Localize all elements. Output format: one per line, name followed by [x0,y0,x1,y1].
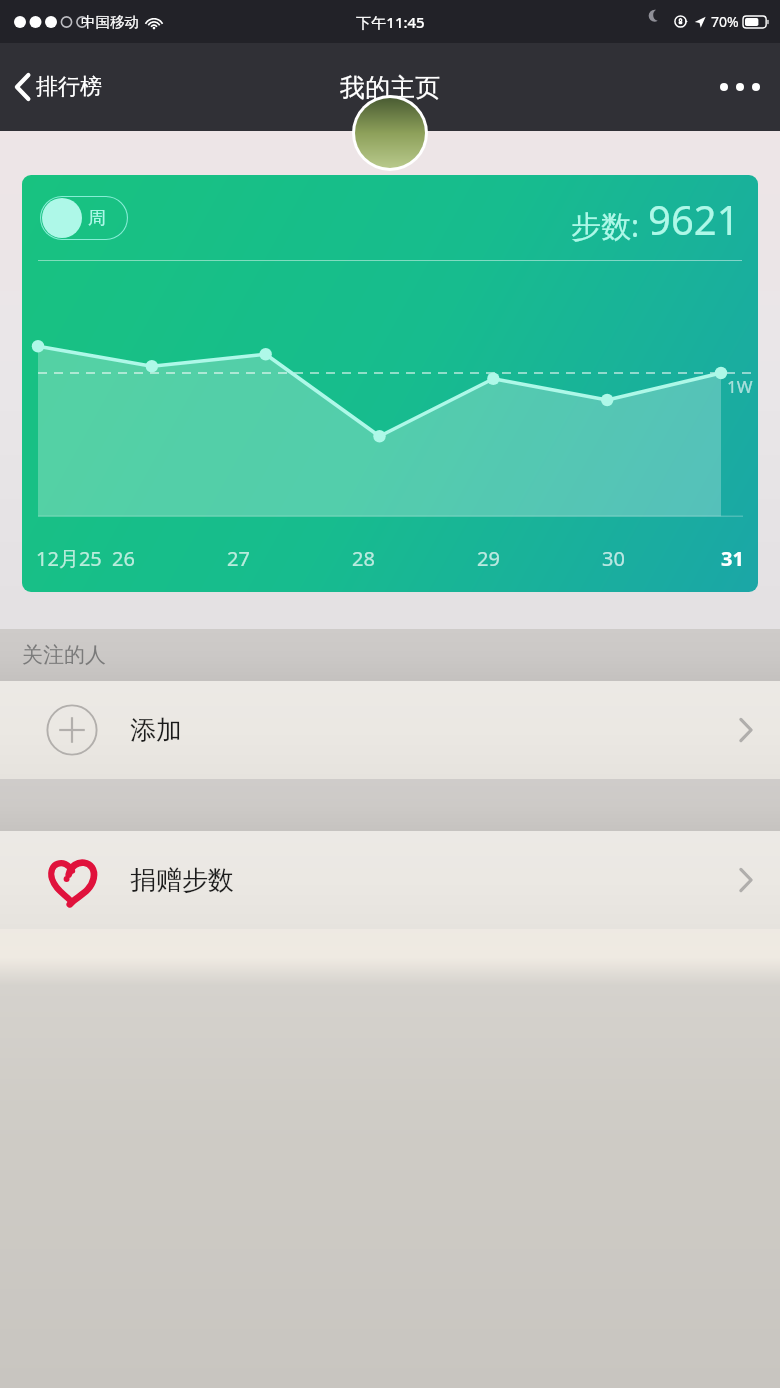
button[interactable]: 排行榜 [0,64,114,110]
staticText: 添加 [130,714,182,747]
button[interactable]: 周 [22,175,758,592]
button[interactable]: 周 [40,196,128,240]
staticText: 9621 [648,192,740,246]
staticText: 我的主页 [340,72,440,103]
staticText: 70% [711,12,739,31]
staticText: 31 [721,545,744,572]
button[interactable]: 捐赠步数 [0,831,780,929]
button[interactable]: 添加 [0,681,780,779]
button[interactable]: More options [700,65,780,109]
staticText: 1W [727,375,753,398]
staticText: 12月25 [36,545,102,572]
staticText: 29 [477,545,500,572]
staticText: 26 [112,545,135,572]
staticText: 周 [88,207,106,230]
staticText: 28 [352,545,375,572]
staticText: 排行榜 [36,73,102,101]
staticText: 30 [602,545,625,572]
staticText: 步数: [571,205,640,246]
staticText: 关注的人 [22,642,106,668]
staticText: 中国移动 [81,13,139,31]
staticText: 27 [227,545,250,572]
staticText: 捐赠步数 [130,864,234,897]
staticText: 下午11:45 [356,12,425,32]
